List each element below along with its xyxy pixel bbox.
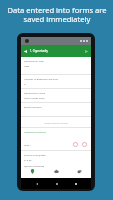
staticText: 0	[24, 82, 26, 85]
staticText: Number of Beehives Lost/Sold	[24, 77, 58, 80]
button[interactable]: Camera	[54, 169, 59, 174]
staticText: Opportunity Type	[24, 59, 44, 62]
other: Back	[23, 49, 28, 54]
staticText: Data entered into forms are saved immedi…	[7, 5, 107, 24]
button[interactable]: Opportunity Type	[24, 59, 91, 74]
staticText: Create Billing Contact	[44, 121, 69, 124]
button[interactable]: Recents	[72, 180, 79, 187]
button[interactable]: Back	[33, 180, 40, 187]
button[interactable]: Price to Last Queen	[24, 153, 91, 161]
staticText: Opportunity Name	[24, 91, 46, 94]
button[interactable]: Back	[21, 45, 91, 57]
staticText: Additional Contacts	[24, 130, 46, 133]
button[interactable]: Create Billing Contact	[21, 117, 91, 127]
staticText: 1. Opportunity	[30, 49, 48, 53]
button[interactable]: Additional Contacts	[21, 128, 91, 150]
staticText: Quality Certificate	[24, 164, 45, 167]
button[interactable]: Opportunity Name	[24, 91, 91, 102]
staticText: New	[24, 64, 29, 67]
button[interactable]: Delete	[82, 142, 87, 147]
button[interactable]: Home	[53, 180, 60, 187]
staticText: Row 1	[24, 143, 31, 146]
button[interactable]: Location	[30, 169, 35, 174]
other: Next	[84, 49, 89, 54]
button[interactable]: Number of Beehives Lost/Sold	[24, 77, 91, 88]
staticText: Billing Contacts	[24, 105, 42, 108]
button[interactable]: Edit	[73, 142, 78, 147]
staticText: Price to Last Queen	[24, 153, 46, 156]
button[interactable]: More	[77, 169, 82, 174]
staticText: $12.00	[24, 158, 32, 161]
staticText: Smith Honey Farm	[24, 96, 45, 99]
button[interactable]: Billing Contacts	[24, 105, 91, 116]
